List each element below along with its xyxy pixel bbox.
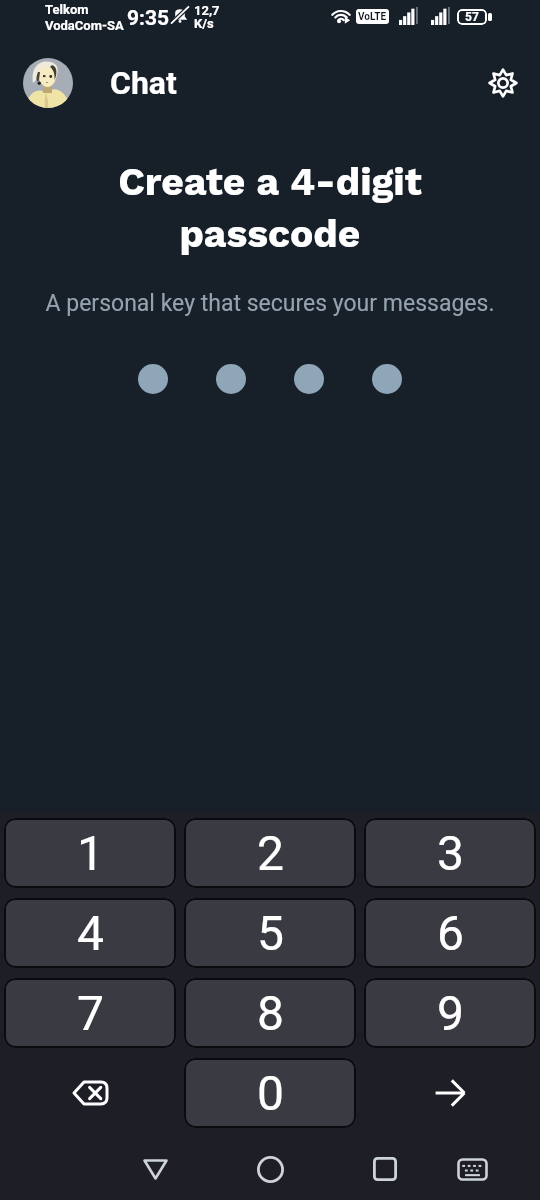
staticText: 7 [77, 985, 104, 1041]
staticText: VodaCom-SA [45, 18, 124, 33]
staticText: K/s [194, 16, 214, 31]
staticText: 9 [437, 985, 464, 1041]
staticText: 1 [77, 825, 104, 881]
button[interactable]: 0 [184, 1058, 356, 1128]
button[interactable]: 8 [184, 978, 356, 1048]
button[interactable]: 9 [364, 978, 536, 1048]
button[interactable]: 5 [184, 898, 356, 968]
button[interactable]: Submit [360, 1058, 540, 1128]
staticText: A personal key that secures your message… [0, 290, 540, 317]
button[interactable]: Switch keyboard [445, 1142, 499, 1196]
button[interactable]: 7 [4, 978, 176, 1048]
staticText: Create a 4-digit [0, 159, 540, 205]
button[interactable]: 3 [364, 818, 536, 888]
staticText: 1 [384, 15, 389, 24]
staticText: 2 [257, 825, 284, 881]
staticText: passcode [0, 211, 540, 257]
button[interactable]: Home [243, 1142, 297, 1196]
staticText: 9:35 [127, 6, 170, 31]
staticText: 12,7 [194, 3, 220, 18]
staticText: 5 [257, 905, 284, 961]
button[interactable]: Backspace [0, 1058, 180, 1128]
button[interactable]: Settings [480, 60, 526, 106]
staticText: 8 [257, 985, 284, 1041]
button[interactable]: Profile [23, 58, 73, 108]
button[interactable]: Recent apps [358, 1142, 412, 1196]
staticText: 57 [465, 10, 479, 24]
staticText: 6 [437, 905, 464, 961]
button[interactable]: 4 [4, 898, 176, 968]
staticText: Telkom [45, 2, 89, 17]
staticText: Chat [110, 64, 177, 102]
staticText: 0 [257, 1065, 284, 1121]
staticText: 3 [437, 825, 464, 881]
button[interactable]: Back [128, 1142, 182, 1196]
button[interactable]: 6 [364, 898, 536, 968]
button[interactable]: 1 [4, 818, 176, 888]
staticText: 4 [77, 905, 104, 961]
staticText: VoLTE [358, 11, 387, 23]
button[interactable]: 2 [184, 818, 356, 888]
